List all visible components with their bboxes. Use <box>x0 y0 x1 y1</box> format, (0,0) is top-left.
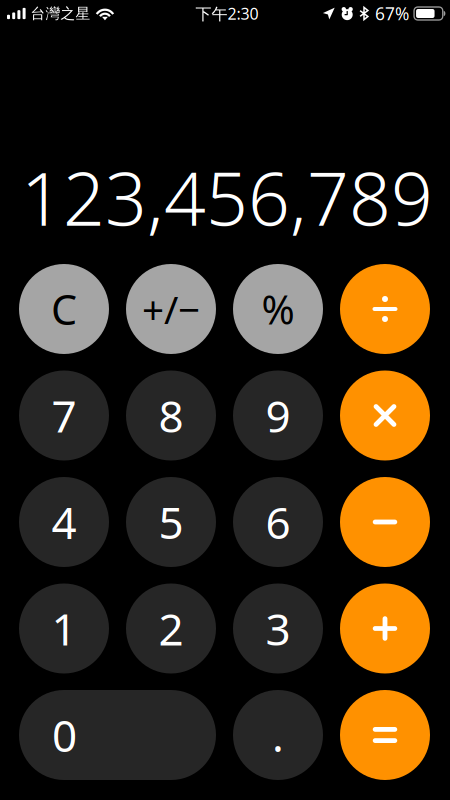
staticText: % <box>261 282 294 335</box>
staticText: 123,456,789 <box>21 149 433 246</box>
staticText: 3 <box>265 599 290 658</box>
button[interactable]: C <box>19 264 109 354</box>
button[interactable]: 8 <box>126 370 216 460</box>
button[interactable]: Multiply <box>340 370 430 460</box>
staticText: 0 <box>52 706 77 764</box>
staticText: 8 <box>158 386 183 445</box>
staticText: 下午2:30 <box>195 3 258 24</box>
button[interactable]: 9 <box>233 370 323 460</box>
button[interactable]: Minus <box>340 477 430 567</box>
staticText: +/− <box>142 283 200 335</box>
staticText: . <box>272 706 284 764</box>
button[interactable]: Equals <box>340 690 430 780</box>
button[interactable]: . <box>233 690 323 780</box>
button[interactable]: % <box>233 264 323 354</box>
button[interactable]: 7 <box>19 370 109 460</box>
staticText: 9 <box>265 386 290 445</box>
button[interactable]: 2 <box>126 583 216 673</box>
staticText: 6 <box>265 493 290 551</box>
button[interactable]: Plus <box>340 583 430 673</box>
button[interactable]: 4 <box>19 477 109 567</box>
button[interactable]: 3 <box>233 583 323 673</box>
staticText: 4 <box>51 493 76 551</box>
staticText: C <box>51 282 77 336</box>
staticText: 7 <box>51 386 76 445</box>
staticText: 67% <box>375 2 409 25</box>
button[interactable]: 6 <box>233 477 323 567</box>
staticText: 5 <box>158 493 183 551</box>
button[interactable]: +/− <box>126 264 216 354</box>
staticText: 1 <box>51 599 76 658</box>
button[interactable]: 1 <box>19 583 109 673</box>
button[interactable]: Divide <box>340 264 430 354</box>
staticText: 台灣之星 <box>30 4 90 22</box>
button[interactable]: 5 <box>126 477 216 567</box>
button[interactable]: 0 <box>19 690 216 780</box>
staticText: 2 <box>158 599 183 658</box>
